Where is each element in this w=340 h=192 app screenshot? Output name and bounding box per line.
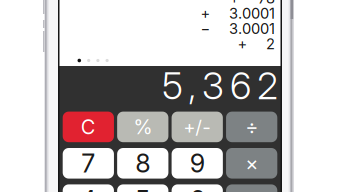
button[interactable]: − bbox=[226, 184, 277, 192]
staticText: 9 bbox=[190, 148, 205, 179]
button[interactable]: 9 bbox=[172, 148, 223, 179]
staticText: + bbox=[229, 0, 239, 7]
button[interactable]: 6 bbox=[172, 184, 223, 192]
staticText: ÷ bbox=[245, 115, 258, 139]
button[interactable]: 5 bbox=[117, 184, 168, 192]
staticText: 7 bbox=[81, 148, 95, 179]
staticText: 3.0001 bbox=[229, 5, 275, 22]
button[interactable]: 4 bbox=[63, 184, 114, 192]
staticText: + bbox=[237, 35, 247, 53]
button[interactable]: ÷ bbox=[226, 112, 277, 142]
staticText: 4 bbox=[80, 184, 96, 192]
staticText: + bbox=[200, 5, 210, 22]
button[interactable]: % bbox=[117, 112, 168, 142]
button[interactable]: 7 bbox=[63, 148, 114, 179]
staticText: 6 bbox=[190, 184, 205, 192]
staticText: 8 bbox=[135, 148, 150, 179]
staticText: × bbox=[245, 151, 258, 175]
button[interactable]: × bbox=[226, 148, 277, 179]
staticText: 2 bbox=[266, 35, 275, 53]
button[interactable]: C bbox=[63, 112, 114, 142]
staticText: % bbox=[133, 115, 152, 139]
staticText: − bbox=[200, 20, 210, 37]
staticText: C bbox=[81, 115, 96, 139]
button[interactable]: +/- bbox=[172, 112, 223, 142]
staticText: 5 bbox=[135, 184, 150, 192]
staticText: 5,362 bbox=[162, 63, 278, 108]
button[interactable]: 8 bbox=[117, 148, 168, 179]
staticText: 3.0001 bbox=[229, 20, 275, 37]
staticText: 78 bbox=[258, 0, 275, 7]
staticText: +/- bbox=[183, 116, 211, 138]
